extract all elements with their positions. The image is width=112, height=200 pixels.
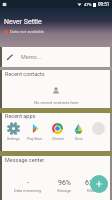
staticText: Drive bbox=[75, 137, 83, 141]
staticText: Recent contacts bbox=[5, 71, 45, 77]
staticText: Recent apps bbox=[5, 113, 36, 119]
staticText: Message center bbox=[5, 157, 45, 163]
staticText: No recent contacts here bbox=[34, 100, 79, 105]
staticText: 96% bbox=[58, 179, 71, 187]
button[interactable]: - bbox=[14, 179, 42, 193]
staticText: Chrome bbox=[52, 137, 64, 141]
button[interactable]: Settings bbox=[6, 122, 21, 141]
button[interactable]: Play Store bbox=[26, 122, 44, 141]
button[interactable]: 96% bbox=[57, 179, 71, 193]
staticText: 09:51 bbox=[98, 2, 110, 7]
staticText: Storage bbox=[57, 188, 71, 193]
staticText: - bbox=[27, 179, 29, 187]
staticText: Data not available bbox=[10, 29, 45, 34]
staticText: Settings bbox=[7, 137, 20, 141]
staticText: Data remaining bbox=[14, 188, 42, 193]
staticText: 62% bbox=[85, 179, 98, 187]
button[interactable] bbox=[91, 122, 106, 141]
staticText: Play Store bbox=[27, 137, 43, 141]
staticText: Memo... bbox=[21, 54, 42, 60]
button[interactable]: Drive bbox=[71, 122, 86, 141]
staticText: Never Settle bbox=[4, 18, 42, 26]
button[interactable]: Add bbox=[90, 175, 108, 193]
staticText: 47% bbox=[84, 2, 92, 7]
button[interactable]: Memo... bbox=[0, 47, 112, 67]
button[interactable]: Chrome bbox=[50, 122, 65, 141]
button[interactable]: 62% bbox=[85, 179, 98, 193]
staticText: RAM bbox=[87, 188, 96, 193]
